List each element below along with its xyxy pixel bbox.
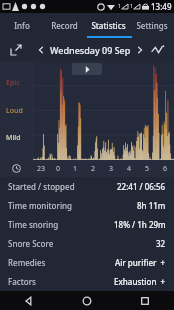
staticText: 1: [118, 3, 121, 10]
staticText: Air purifier +: [115, 257, 166, 268]
button[interactable]: Statistics: [86, 13, 130, 38]
staticText: 8h 11m: [137, 200, 166, 211]
staticText: 1: [130, 3, 133, 10]
button[interactable]: Time snoring: [0, 215, 174, 234]
button[interactable]: Recents: [116, 291, 174, 310]
button[interactable]: Settings: [130, 13, 174, 38]
button[interactable]: Remedies: [0, 253, 174, 272]
staticText: Settings: [136, 20, 168, 31]
staticText: 1: [73, 164, 78, 174]
staticText: 2: [91, 164, 96, 174]
button[interactable]: Waveform: [150, 42, 166, 58]
button[interactable]: Next day: [133, 43, 147, 57]
staticText: 3: [109, 164, 114, 174]
staticText: 32: [156, 238, 166, 249]
button[interactable]: Home: [58, 291, 116, 310]
staticText: Mild: [6, 133, 21, 143]
staticText: Epic: [6, 78, 20, 88]
staticText: 13:49: [151, 1, 172, 12]
button[interactable]: Snore Score: [0, 234, 174, 253]
button[interactable]: Record: [43, 13, 86, 38]
staticText: 0: [56, 164, 61, 174]
staticText: 4: [127, 164, 132, 174]
button[interactable]: Factors: [0, 272, 174, 291]
staticText: Factors: [8, 276, 36, 287]
staticText: Remedies: [8, 257, 46, 268]
staticText: Time monitoring: [8, 200, 73, 211]
staticText: Started / stopped: [8, 181, 75, 192]
staticText: 23: [37, 164, 46, 174]
staticText: Wednesday 09 Sep: [50, 44, 131, 56]
button[interactable]: Started / stopped: [0, 177, 174, 196]
button[interactable]: Play: [72, 63, 102, 75]
staticText: 6: [163, 164, 168, 174]
button[interactable]: Time monitoring: [0, 196, 174, 215]
staticText: 5: [145, 164, 150, 174]
staticText: Time snoring: [8, 219, 59, 230]
button[interactable]: Share: [8, 42, 24, 58]
staticText: Exhaustion +: [114, 276, 166, 287]
button[interactable]: Info: [0, 13, 43, 38]
staticText: 18% / 1h 29m: [114, 219, 166, 230]
button[interactable]: Previous day: [34, 43, 48, 57]
staticText: 22:41 / 06:56: [117, 181, 166, 192]
staticText: Record: [51, 20, 78, 31]
staticText: Statistics: [91, 20, 126, 31]
staticText: Loud: [6, 106, 23, 116]
staticText: Info: [14, 20, 30, 31]
button[interactable]: Back: [0, 291, 58, 310]
staticText: Snore Score: [8, 238, 54, 249]
